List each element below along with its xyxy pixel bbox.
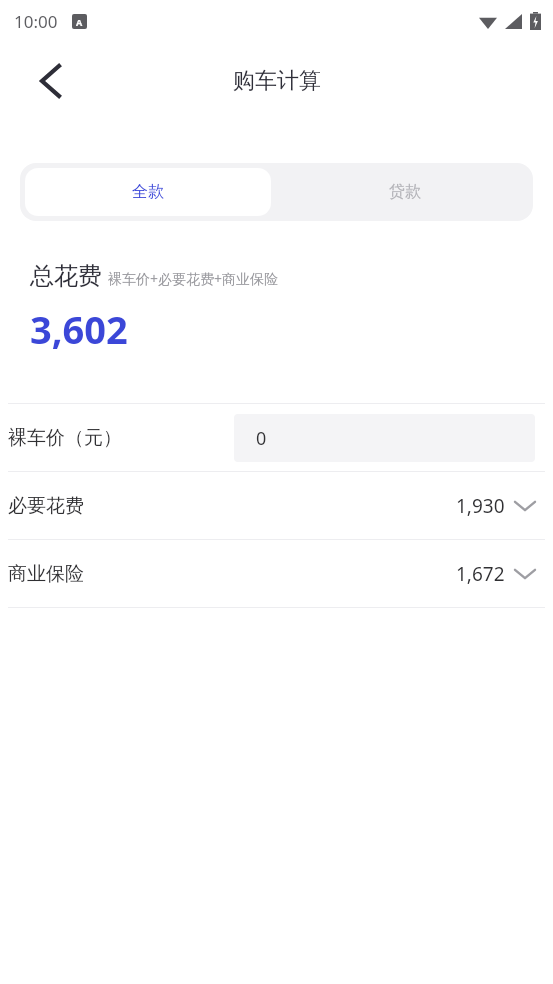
staticText: 全款	[132, 182, 164, 202]
button[interactable]: 全款	[25, 168, 271, 216]
staticText: 10:00	[14, 10, 58, 33]
staticText: 贷款	[389, 182, 421, 202]
button[interactable]: 裸车价（元）	[0, 404, 553, 471]
staticText: 商业保险	[8, 562, 84, 586]
staticText: 3,602	[30, 303, 128, 355]
staticText: 购车计算	[233, 67, 321, 95]
button[interactable]: 必要花费	[0, 472, 553, 539]
button[interactable]: Back	[22, 53, 78, 109]
staticText: 必要花费	[8, 494, 84, 518]
staticText: 1,672	[456, 561, 505, 587]
staticText: 裸车价+必要花费+商业保险	[108, 269, 279, 288]
button[interactable]: 商业保险	[0, 540, 553, 607]
staticText: 1,930	[456, 493, 505, 519]
staticText: 0	[256, 426, 267, 451]
staticText: 裸车价（元）	[8, 426, 122, 450]
button[interactable]: 贷款	[276, 163, 533, 221]
staticText: 总花费	[30, 261, 102, 291]
staticText: A	[76, 16, 83, 28]
